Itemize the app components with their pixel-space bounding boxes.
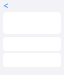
button[interactable]: Back xyxy=(2,2,10,10)
staticText: < xyxy=(3,1,8,11)
